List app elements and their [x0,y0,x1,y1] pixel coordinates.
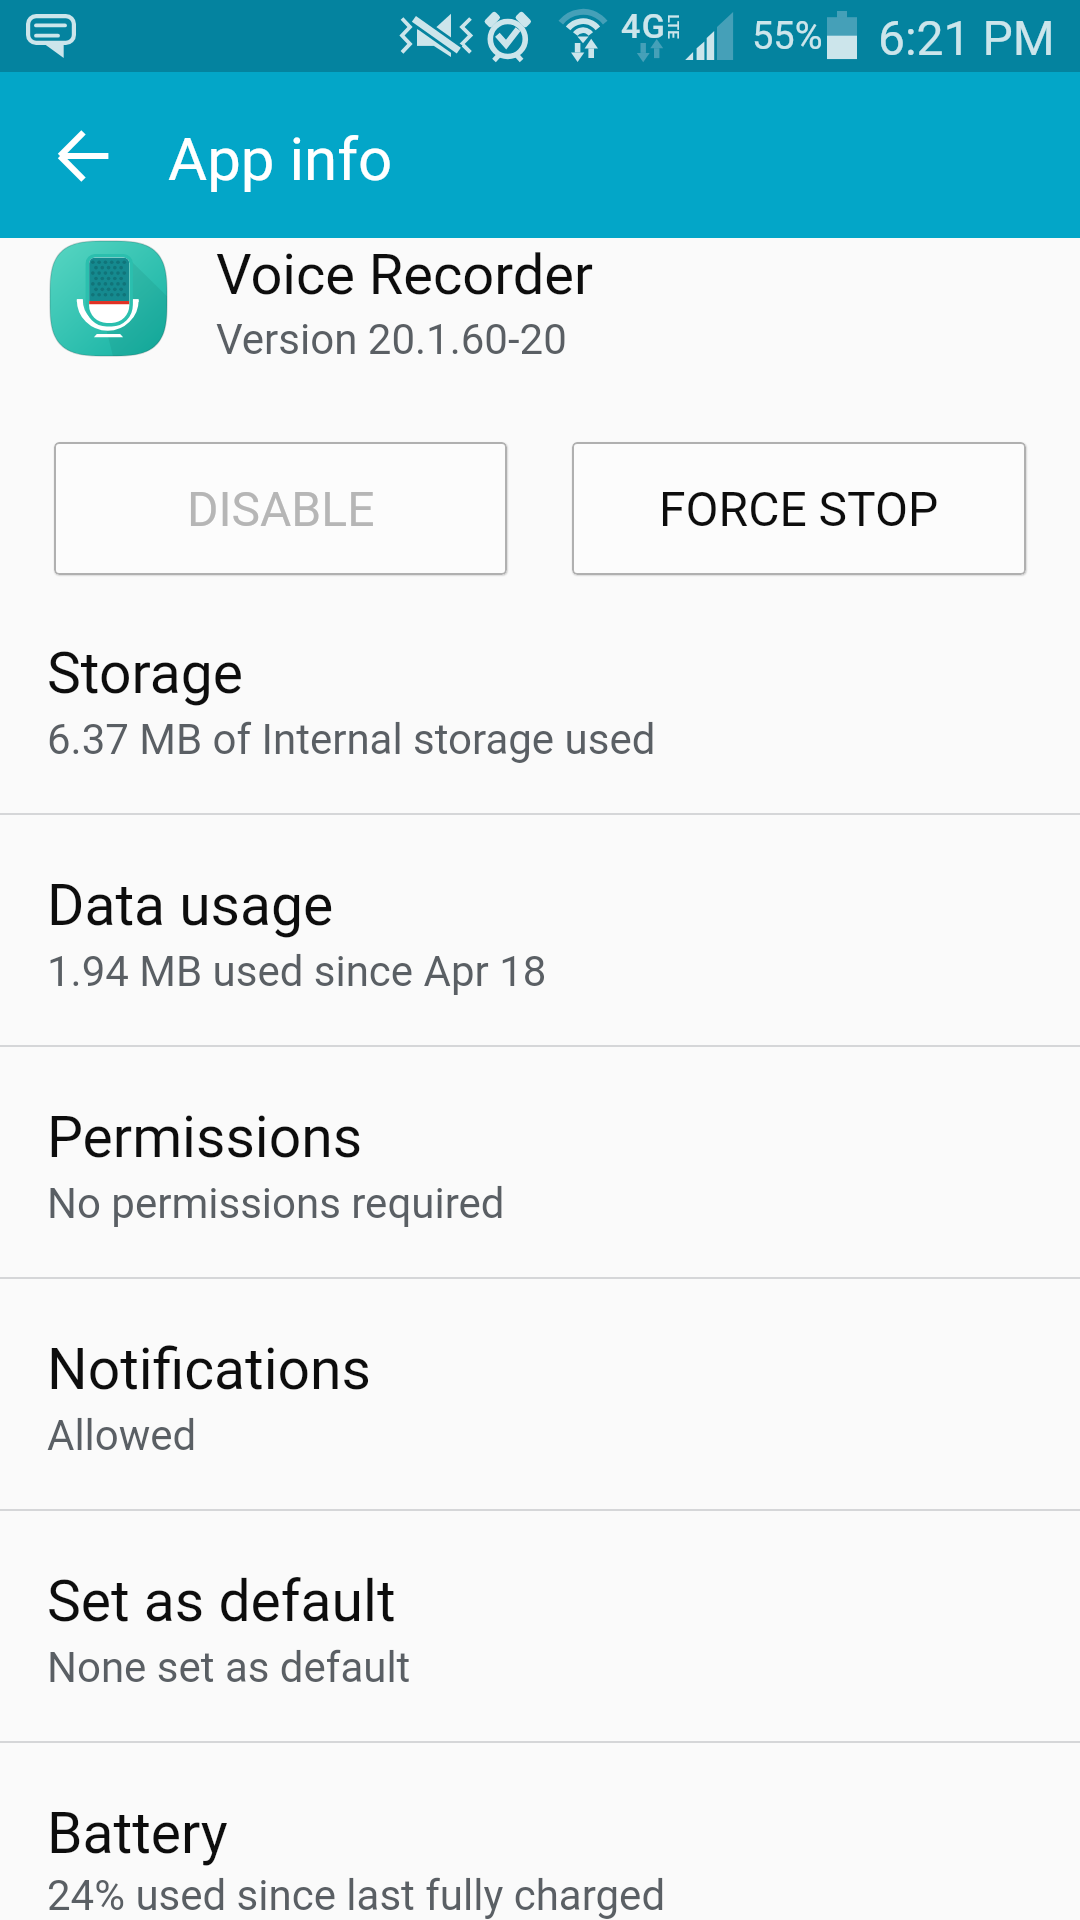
button[interactable]: Data usage [0,815,1080,1047]
staticText: 1.94 MB used since Apr 18 [47,947,547,996]
staticText: Version 20.1.60-20 [216,315,567,364]
button[interactable]: Battery [0,1743,1080,1920]
staticText: Battery [47,1800,228,1867]
button[interactable]: DISABLE [54,442,507,575]
staticText: Data usage [47,872,334,939]
button[interactable]: Navigate up [36,108,132,204]
staticText: Set as default [47,1568,396,1635]
staticText: Voice Recorder [216,242,594,308]
staticText: 55% [752,14,823,59]
staticText: 6.37 MB of Internal storage used [47,715,656,764]
staticText: FORCE STOP [659,481,939,537]
staticText: DISABLE [187,481,375,537]
button[interactable]: Set as default [0,1511,1080,1743]
staticText: Allowed [47,1411,197,1460]
button[interactable]: FORCE STOP [572,442,1026,575]
staticText: Storage [47,640,243,707]
staticText: No permissions required [47,1179,505,1228]
staticText: App info [168,124,393,194]
staticText: Notifications [47,1336,372,1403]
staticText: None set as default [47,1643,411,1692]
staticText: 24% used since last fully charged [47,1871,666,1920]
staticText: 6:21 PM [878,10,1055,66]
staticText: 4G [621,6,667,46]
staticText: Permissions [47,1104,363,1171]
button[interactable]: Permissions [0,1047,1080,1279]
button[interactable]: Storage [0,583,1080,815]
staticText: LTE [663,14,681,39]
button[interactable]: Notifications [0,1279,1080,1511]
